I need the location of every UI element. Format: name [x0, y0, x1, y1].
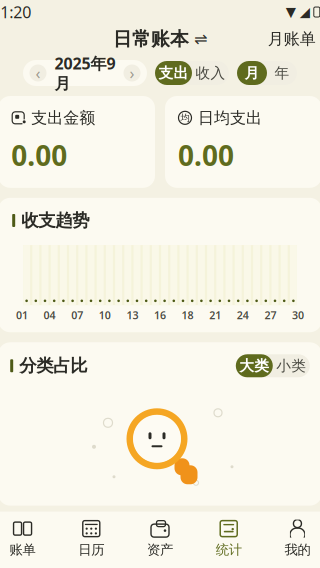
button[interactable]: 我的 — [263, 512, 320, 568]
button[interactable]: 账单 — [0, 512, 57, 568]
button[interactable]: 日历 — [57, 512, 126, 568]
staticText: 账单 — [10, 542, 36, 558]
button[interactable]: 年 — [267, 61, 297, 85]
staticText: ▼ — [286, 4, 296, 19]
staticText: 支出金额 — [31, 108, 95, 128]
button[interactable]: 日常账本 — [107, 23, 213, 54]
staticText: 年 — [274, 64, 289, 82]
staticText: 07 — [71, 308, 83, 322]
staticText: ‹ — [35, 62, 40, 84]
button[interactable]: 下个月 — [120, 61, 144, 85]
staticText: 日历 — [78, 542, 104, 558]
staticText: 大类 — [239, 357, 269, 375]
staticText: 27 — [264, 308, 276, 322]
staticText: 日常账本 — [113, 27, 189, 50]
staticText: 04 — [44, 308, 56, 322]
button[interactable]: 月 — [237, 61, 267, 85]
staticText: 2025年9月 — [54, 52, 115, 93]
button[interactable]: 月账单 — [260, 25, 320, 53]
button[interactable]: 小类 — [273, 354, 310, 377]
staticText: 16 — [154, 308, 166, 322]
button[interactable]: 收入 — [192, 61, 229, 85]
button[interactable]: 统计 — [194, 512, 263, 568]
staticText: 小类 — [276, 357, 306, 375]
staticText: 分类占比 — [19, 355, 87, 376]
staticText: 21 — [209, 308, 221, 322]
staticText: 0.00 — [11, 137, 67, 174]
staticText: ◢ — [300, 4, 310, 19]
staticText: 18 — [182, 308, 194, 322]
staticText: 日均支出 — [198, 108, 262, 128]
button[interactable]: 支出 — [155, 61, 192, 85]
staticText: 01 — [16, 308, 28, 322]
staticText: 均 — [180, 112, 189, 124]
button[interactable]: 大类 — [236, 354, 273, 377]
staticText: 收入 — [195, 64, 225, 82]
staticText: 统计 — [216, 542, 242, 558]
staticText: 1:20 — [0, 1, 31, 23]
staticText: 0.00 — [178, 137, 234, 174]
staticText: 13 — [126, 308, 138, 322]
staticText: 资产 — [147, 542, 173, 558]
staticText: › — [129, 62, 134, 84]
button[interactable]: 上个月 — [26, 61, 50, 85]
staticText: 月 — [244, 64, 259, 82]
staticText: 10 — [99, 308, 111, 322]
staticText: 支出 — [158, 64, 188, 82]
staticText: 收支趋势 — [21, 210, 89, 231]
staticText: 我的 — [284, 542, 310, 558]
button[interactable]: 资产 — [126, 512, 194, 568]
staticText: 30 — [292, 308, 304, 322]
staticText: ⇌ — [194, 30, 207, 48]
staticText: 24 — [237, 308, 249, 322]
staticText: 月账单 — [268, 29, 316, 49]
